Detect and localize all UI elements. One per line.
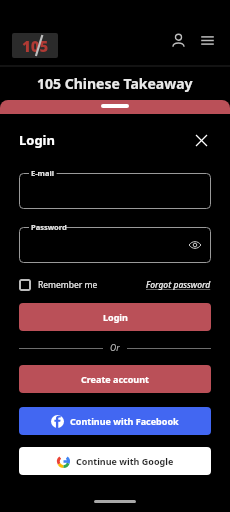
staticText: Forgot password bbox=[146, 279, 211, 291]
staticText: E-mail bbox=[31, 168, 54, 178]
button[interactable]: Login bbox=[19, 303, 211, 331]
staticText: Continue with Google bbox=[76, 455, 174, 467]
button[interactable]: Continue with Google bbox=[19, 447, 211, 475]
staticText: Or bbox=[110, 342, 120, 354]
staticText: Create account bbox=[81, 373, 149, 385]
button[interactable]: Close bbox=[191, 130, 211, 150]
button[interactable]: Forgot password bbox=[146, 279, 211, 291]
button[interactable]: Menu bbox=[194, 27, 220, 53]
staticText: Login bbox=[103, 311, 128, 323]
button[interactable]: Create account bbox=[19, 365, 211, 393]
button[interactable]: Remember me bbox=[19, 279, 98, 291]
button[interactable]: Password bbox=[19, 227, 211, 263]
staticText: Password bbox=[31, 222, 67, 232]
staticText: Login bbox=[19, 131, 55, 149]
staticText: Remember me bbox=[38, 279, 98, 291]
button[interactable]: Account bbox=[165, 27, 191, 53]
button[interactable]: 105 logo bbox=[12, 33, 58, 58]
staticText: 105 bbox=[22, 36, 49, 56]
staticText: 105 Chinese Takeaway bbox=[37, 74, 193, 93]
button[interactable]: E-mail bbox=[19, 173, 211, 209]
button[interactable]: Show password bbox=[187, 237, 203, 253]
button[interactable]: Continue with Facebook bbox=[19, 407, 211, 435]
staticText: Continue with Facebook bbox=[70, 415, 179, 427]
